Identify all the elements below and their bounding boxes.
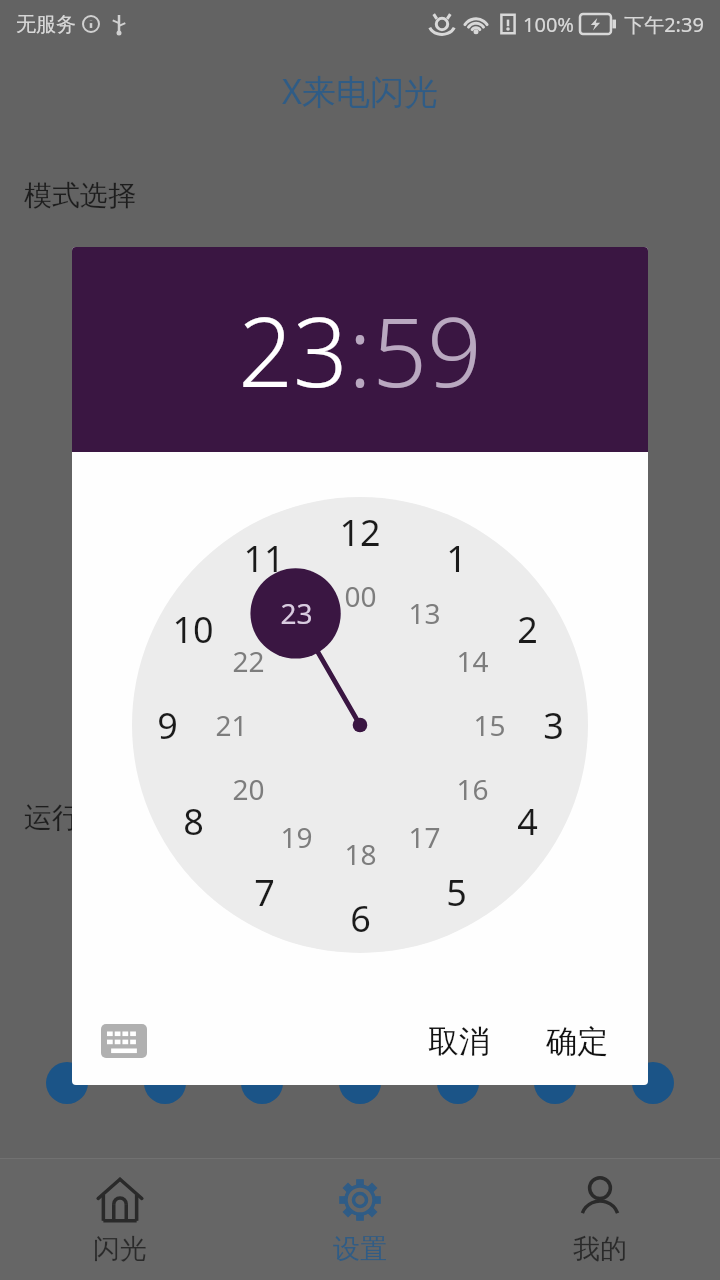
- staticText: 17: [408, 818, 441, 856]
- button[interactable]: Switch to text input: [96, 1013, 152, 1069]
- staticText: 15: [473, 706, 506, 744]
- staticText: 10: [172, 605, 214, 654]
- staticText: 确定: [546, 1022, 608, 1061]
- staticText: 我的: [573, 1232, 627, 1266]
- staticText: 5: [446, 868, 467, 917]
- staticText: 20: [232, 770, 265, 808]
- button[interactable]: 取消: [412, 1010, 506, 1073]
- staticText: 13: [408, 594, 441, 632]
- staticText: 模式选择: [24, 178, 136, 213]
- staticText: 21: [215, 706, 248, 744]
- staticText: 22: [232, 642, 265, 680]
- staticText: 无服务: [16, 12, 76, 37]
- staticText: 8: [183, 797, 204, 846]
- staticText: 下午2:39: [624, 11, 704, 38]
- staticText: 18: [344, 835, 377, 873]
- staticText: 3: [543, 701, 564, 750]
- staticText: :: [348, 284, 372, 415]
- staticText: 14: [456, 642, 489, 680]
- staticText: 2: [517, 605, 538, 654]
- button[interactable]: 闪光: [0, 1159, 240, 1280]
- staticText: 11: [243, 534, 285, 583]
- staticText: 00: [344, 577, 377, 615]
- staticText: 4: [517, 797, 538, 846]
- staticText: 16: [456, 770, 489, 808]
- staticText: 19: [280, 818, 313, 856]
- staticText: X来电闪光: [282, 68, 438, 114]
- staticText: 100%: [523, 11, 574, 38]
- staticText: 取消: [428, 1022, 490, 1061]
- button[interactable]: 23: [238, 284, 348, 415]
- staticText: 运行: [24, 800, 80, 835]
- staticText: 23: [238, 284, 348, 415]
- staticText: 设置: [333, 1232, 387, 1266]
- staticText: 6: [350, 894, 371, 943]
- staticText: 1: [446, 534, 467, 583]
- button[interactable]: 我的: [480, 1159, 720, 1280]
- staticText: 23: [280, 594, 313, 632]
- staticText: 12: [339, 508, 381, 557]
- staticText: 闪光: [93, 1232, 147, 1266]
- button[interactable]: 确定: [530, 1010, 624, 1073]
- staticText: 7: [254, 868, 275, 917]
- staticText: 9: [157, 701, 178, 750]
- button[interactable]: 设置: [240, 1159, 480, 1280]
- staticText: 59: [372, 284, 482, 415]
- button[interactable]: 59: [372, 284, 482, 415]
